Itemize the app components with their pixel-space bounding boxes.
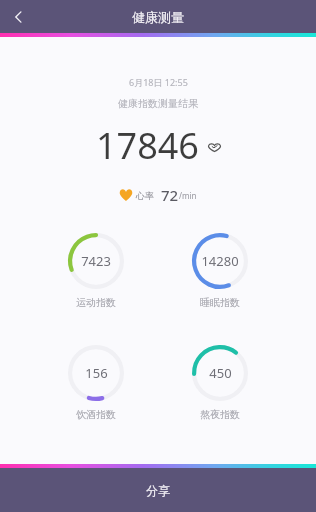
staticText: 运动指数 [76, 296, 116, 309]
button[interactable]: Back [0, 0, 38, 33]
staticText: 156 [85, 364, 108, 382]
staticText: 72 [161, 185, 179, 205]
staticText: 14280 [201, 252, 239, 270]
button[interactable]: 156 [68, 345, 124, 421]
button[interactable]: 14280 [192, 233, 248, 309]
staticText: 17846 [96, 121, 199, 170]
button[interactable]: 7423 [68, 233, 124, 309]
staticText: 健康指数测量结果 [118, 97, 198, 110]
staticText: 饮酒指数 [76, 408, 116, 421]
button[interactable]: 分享 [0, 468, 316, 512]
staticText: 心率 [136, 190, 154, 201]
staticText: 7423 [81, 252, 111, 270]
staticText: 6月18日 12:55 [129, 76, 188, 88]
staticText: 450 [209, 364, 232, 382]
staticText: 健康测量 [132, 9, 184, 25]
staticText: /min [179, 190, 197, 201]
button[interactable]: 450 [192, 345, 248, 421]
staticText: 熬夜指数 [200, 408, 240, 421]
staticText: 睡眠指数 [200, 296, 240, 309]
staticText: 分享 [146, 483, 170, 498]
